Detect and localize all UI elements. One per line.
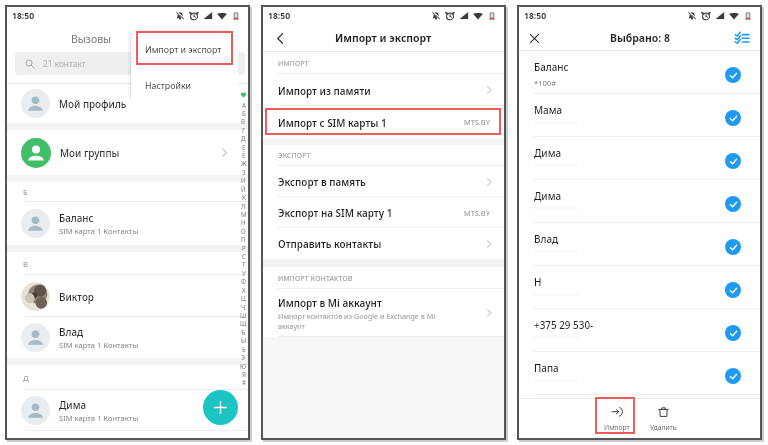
staticText: Б (23, 187, 28, 197)
staticText: Ю (240, 362, 247, 370)
button[interactable]: Баланс (519, 51, 760, 94)
button[interactable]: Отправить контакты (263, 228, 504, 259)
staticText: ИМПОРТ (278, 59, 309, 68)
staticText: Отправить контакты (278, 237, 382, 250)
button[interactable]: Импорт и экспорт (131, 31, 238, 68)
staticText: Мои группы (60, 146, 120, 159)
staticText: ИМПОРТ КОНТАКТОВ (278, 274, 353, 283)
staticText: Вызовы (71, 32, 112, 46)
staticText: П (241, 235, 246, 243)
staticText: Импорт из памяти (278, 84, 371, 97)
staticText: Н (534, 275, 542, 288)
staticText: Ь (242, 345, 246, 353)
staticText: З (242, 168, 246, 176)
staticText: MTS.BY (464, 117, 490, 127)
staticText: Импорт (604, 423, 630, 432)
button[interactable]: Мой профиль (7, 84, 248, 123)
staticText: Т (242, 260, 246, 268)
staticText: Импорт с SIM карты 1 (278, 116, 387, 129)
staticText: Х (242, 286, 246, 294)
staticText: Мой профиль (59, 97, 127, 110)
staticText: Импорт и экспорт (335, 31, 432, 45)
staticText: +375 29 530- (534, 318, 594, 331)
button[interactable]: Select all (734, 25, 749, 50)
staticText: Импорт и экспорт (145, 44, 222, 56)
staticText: Баланс (534, 60, 569, 73)
staticText: Влад (59, 325, 84, 338)
staticText: MTS.BY (464, 208, 490, 218)
staticText: Баланс (59, 211, 94, 224)
staticText: SIM карта 1 Контакты (59, 340, 139, 350)
button[interactable]: Влад (519, 223, 760, 266)
staticText: Влад (534, 232, 559, 245)
staticText: ЭКСПОРТ (278, 151, 311, 160)
staticText: К (242, 193, 246, 201)
staticText: Ф (241, 277, 247, 285)
staticText: М (241, 210, 247, 218)
button[interactable]: Дима (519, 180, 760, 223)
staticText: Настройки (145, 80, 192, 92)
button[interactable]: Экспорт на SIM карту 1 (263, 197, 504, 228)
button[interactable]: Импорт в Mi аккаунт (263, 289, 504, 337)
button[interactable]: Настройки (131, 68, 238, 104)
button[interactable]: +375 29 530- (519, 309, 760, 352)
staticText: Р (242, 244, 246, 252)
button[interactable]: Влад (7, 317, 248, 358)
button[interactable]: Виктор (7, 275, 248, 317)
staticText: Г (242, 126, 246, 134)
staticText: 18:50 (268, 10, 291, 22)
staticText: Д (23, 373, 29, 383)
button[interactable]: Удалить (643, 401, 683, 437)
button[interactable]: Дима (519, 137, 760, 180)
button[interactable]: Add contact (203, 390, 238, 425)
staticText: Й (241, 185, 246, 193)
staticText: 18:50 (524, 10, 547, 22)
staticText: Мама (534, 103, 563, 116)
staticText: Ъ (241, 328, 246, 336)
staticText: Н (241, 218, 246, 226)
staticText: Э (241, 353, 246, 361)
staticText: Л (241, 202, 246, 210)
staticText: Экспорт на SIM карту 1 (278, 206, 393, 219)
staticText: Щ (240, 319, 247, 327)
staticText: SIM карта 1 Контакты (59, 413, 139, 423)
button[interactable]: Мама (519, 94, 760, 137)
button[interactable]: Папа (519, 352, 760, 395)
staticText: У (242, 269, 246, 277)
button[interactable]: Мои группы (7, 130, 248, 175)
button[interactable]: Дима (7, 390, 248, 431)
staticText: Виктор (59, 290, 94, 303)
staticText: *100# (534, 78, 557, 88)
staticText: Папа (534, 361, 559, 374)
button[interactable]: Баланс (7, 202, 248, 245)
button[interactable]: Экспорт в память (263, 166, 504, 197)
staticText: Ж (241, 159, 247, 167)
staticText: Удалить (650, 423, 677, 432)
staticText: Е (242, 143, 246, 151)
staticText: Ш (240, 311, 247, 319)
staticText: И (241, 176, 246, 184)
staticText: В (23, 259, 28, 269)
button[interactable]: Импорт (597, 401, 637, 437)
staticText: Выбрано: 8 (610, 31, 670, 45)
staticText: Ц (241, 294, 246, 302)
button[interactable]: Close (525, 26, 543, 50)
staticText: О (241, 227, 246, 235)
staticText: Экспорт в память (278, 175, 366, 188)
staticText: Я (242, 370, 246, 378)
button[interactable]: Н (519, 266, 760, 309)
staticText: Ы (241, 336, 247, 344)
staticText: SIM карта 1 Контакты (59, 226, 139, 236)
staticText: Ч (241, 303, 246, 311)
staticText: Ё (242, 151, 246, 159)
button[interactable]: Импорт с SIM карты 1 (263, 106, 504, 138)
staticText: А (242, 101, 246, 109)
button[interactable]: 21 контакт (15, 52, 245, 75)
button[interactable]: Импорт из памяти (263, 74, 504, 106)
button[interactable]: Back (271, 25, 289, 51)
staticText: Дима (534, 189, 562, 202)
staticText: # (242, 378, 246, 386)
staticText: Дима (534, 146, 562, 159)
staticText: Дима (59, 398, 87, 411)
staticText: Д (241, 134, 246, 142)
